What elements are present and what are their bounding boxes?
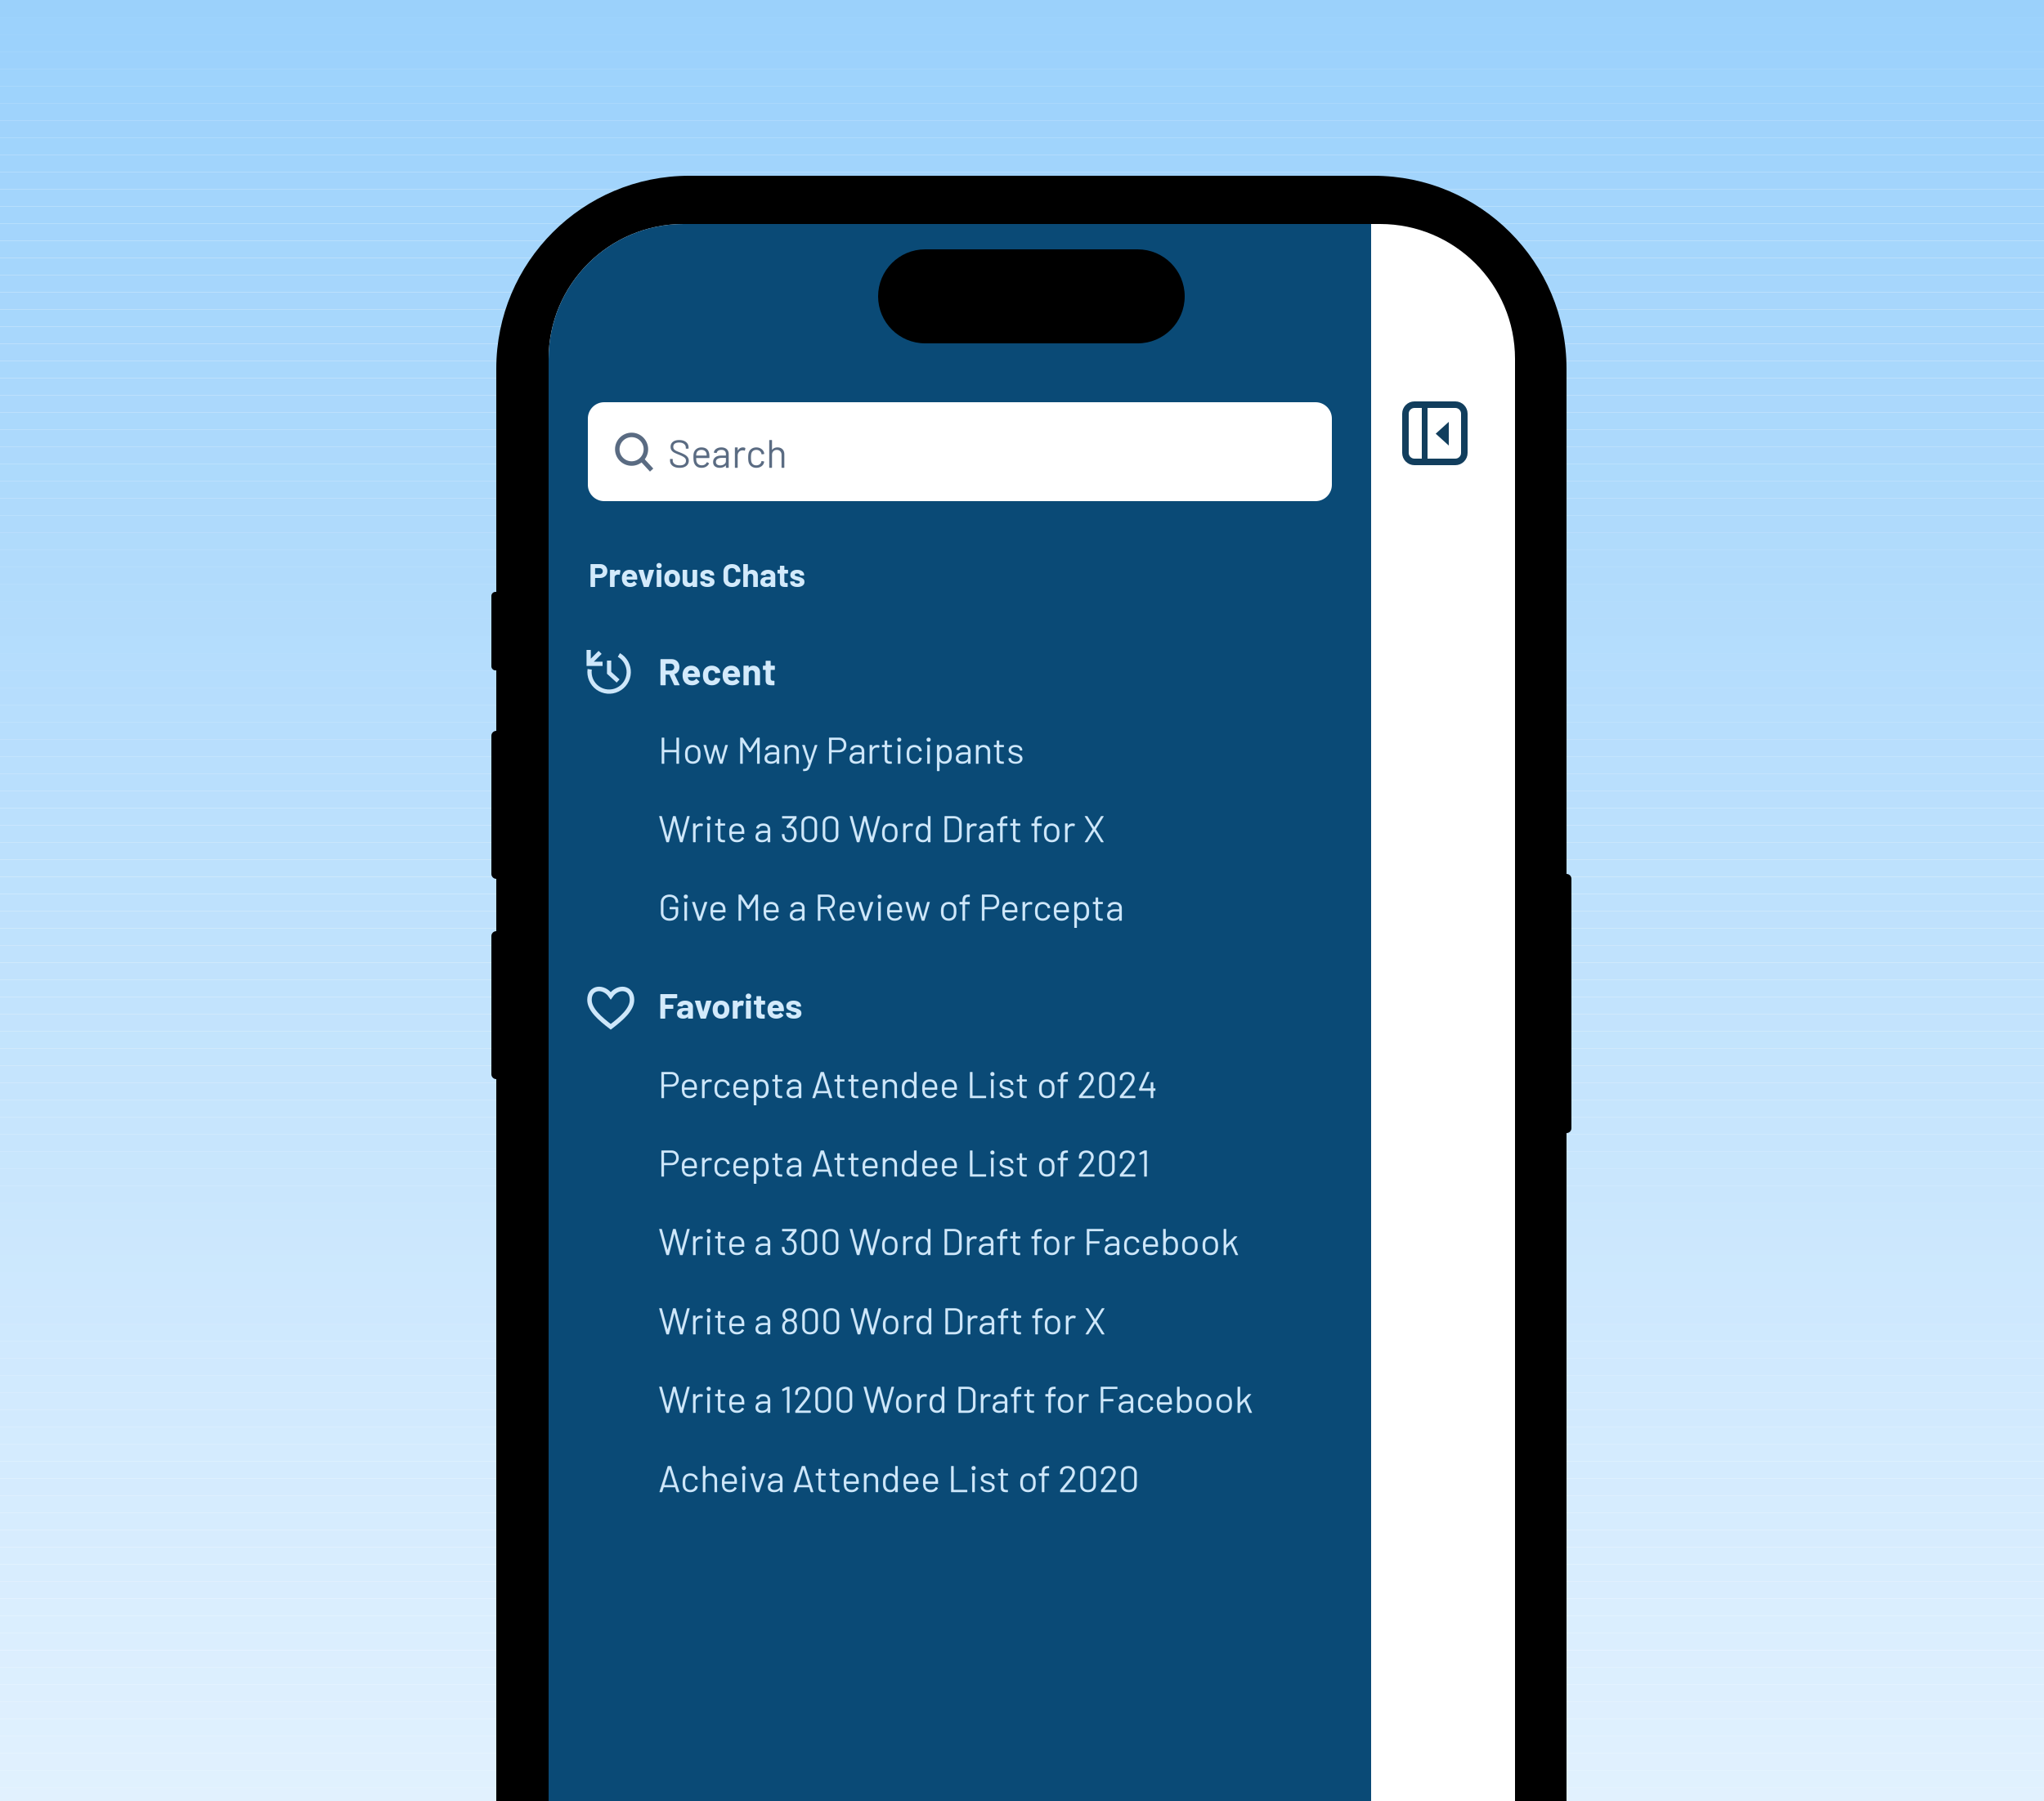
staticText: How Many Participants — [658, 727, 1024, 771]
button[interactable]: Collapse sidebar — [1405, 405, 1464, 462]
button[interactable]: Percepta Attendee List of 2021 — [658, 1122, 1312, 1201]
staticText: Search — [668, 429, 787, 476]
staticText: Previous Chats — [589, 554, 805, 594]
button[interactable]: Write a 300 Word Draft for X — [658, 788, 1312, 867]
button[interactable]: Give Me a Review of Percepta — [658, 867, 1312, 945]
staticText: Percepta Attendee List of 2024 — [658, 1061, 1158, 1105]
button[interactable]: Write a 800 Word Draft for X — [658, 1280, 1312, 1359]
staticText: Write a 300 Word Draft for Facebook — [658, 1218, 1239, 1262]
button[interactable]: Percepta Attendee List of 2024 — [658, 1044, 1312, 1122]
button[interactable]: How Many Participants — [658, 710, 1312, 788]
staticText: Percepta Attendee List of 2021 — [658, 1139, 1150, 1184]
staticText: Write a 1200 Word Draft for Facebook — [658, 1376, 1253, 1420]
button[interactable]: Search — [588, 402, 1332, 501]
button[interactable]: Acheiva Attendee List of 2020 — [658, 1438, 1312, 1517]
staticText: Write a 300 Word Draft for X — [658, 805, 1105, 850]
button[interactable]: Write a 300 Word Draft for Facebook — [658, 1201, 1312, 1279]
staticText: Favorites — [658, 984, 802, 1026]
button[interactable]: Write a 1200 Word Draft for Facebook — [658, 1359, 1312, 1437]
staticText: Recent — [658, 648, 776, 693]
staticText: Write a 800 Word Draft for X — [658, 1297, 1106, 1342]
staticText: Give Me a Review of Percepta — [658, 884, 1124, 928]
staticText: Acheiva Attendee List of 2020 — [658, 1455, 1140, 1499]
